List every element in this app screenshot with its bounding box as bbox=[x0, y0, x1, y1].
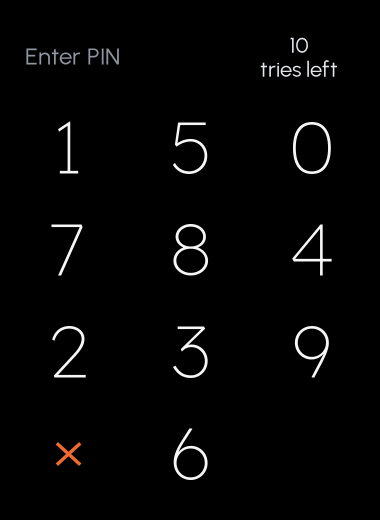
staticText: 1 bbox=[54, 100, 83, 192]
button[interactable]: 2 bbox=[0, 299, 127, 401]
button[interactable]: 0 bbox=[253, 95, 380, 197]
staticText: 2 bbox=[48, 304, 88, 396]
button[interactable]: 6 bbox=[127, 401, 253, 503]
button[interactable]: 3 bbox=[127, 299, 253, 401]
staticText: 9 bbox=[292, 304, 332, 396]
staticText: 5 bbox=[170, 100, 212, 192]
staticText: 4 bbox=[289, 202, 334, 294]
staticText: 0 bbox=[289, 100, 334, 192]
staticText: Enter PIN bbox=[25, 42, 120, 70]
staticText: 6 bbox=[169, 406, 213, 498]
button[interactable]: 5 bbox=[127, 95, 253, 197]
staticText: 7 bbox=[51, 202, 86, 294]
button[interactable]: Delete bbox=[0, 401, 127, 503]
staticText: 8 bbox=[169, 202, 212, 294]
staticText: 3 bbox=[171, 304, 210, 396]
button[interactable]: 8 bbox=[127, 197, 253, 299]
button[interactable]: 9 bbox=[253, 299, 380, 401]
staticText: tries left bbox=[260, 56, 338, 82]
button[interactable]: 7 bbox=[0, 197, 127, 299]
button[interactable]: 1 bbox=[0, 95, 127, 197]
staticText: 10 bbox=[289, 32, 308, 58]
button[interactable]: 4 bbox=[253, 197, 380, 299]
